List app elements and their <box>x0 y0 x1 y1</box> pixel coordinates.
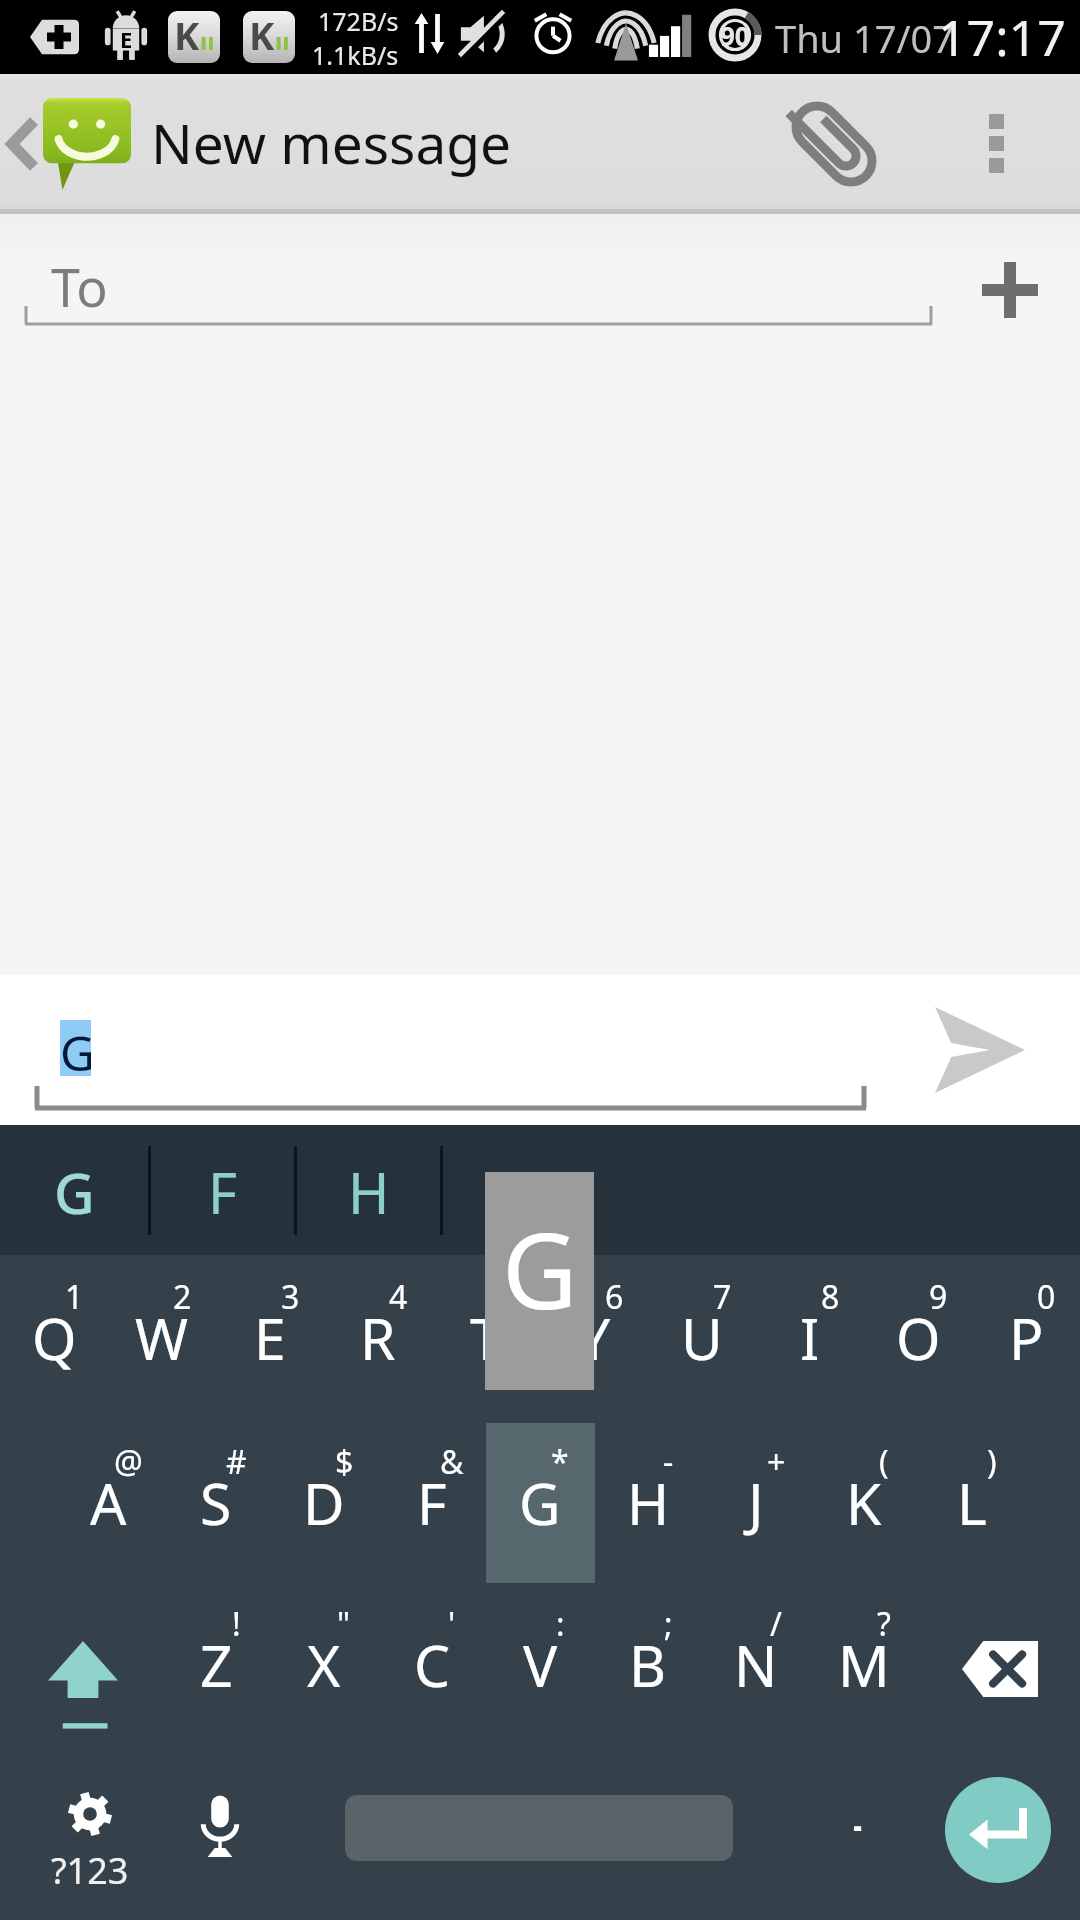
staticText: ? <box>877 1602 891 1646</box>
staticText: 90 <box>720 18 750 53</box>
staticText: " <box>337 1602 351 1646</box>
staticText: G <box>519 1464 561 1542</box>
staticText: / <box>770 1602 782 1646</box>
staticText: K <box>174 11 200 61</box>
staticText: S <box>200 1464 232 1542</box>
button[interactable]: ' <box>378 1582 486 1737</box>
staticText: @ <box>114 1440 143 1484</box>
staticText: $ <box>335 1440 354 1484</box>
button[interactable]: * <box>486 1420 594 1575</box>
button[interactable]: Symbols <box>15 1773 165 1913</box>
button[interactable]: $ <box>270 1420 378 1575</box>
button[interactable]: F <box>151 1125 294 1255</box>
staticText: E <box>120 24 133 54</box>
button[interactable]: Voice input <box>160 1755 280 1895</box>
button[interactable]: 7 <box>648 1255 756 1410</box>
staticText: 8 <box>821 1275 840 1319</box>
staticText: H <box>348 1154 390 1230</box>
staticText: J <box>748 1464 764 1542</box>
staticText: A <box>90 1464 127 1542</box>
button[interactable]: 6 <box>540 1255 648 1410</box>
button[interactable]: 9 <box>864 1255 972 1410</box>
staticText: ! <box>232 1602 241 1646</box>
button[interactable]: 4 <box>324 1255 432 1410</box>
staticText: 9 <box>929 1275 948 1319</box>
button[interactable]: @ <box>54 1420 162 1575</box>
staticText: 1 <box>65 1275 84 1319</box>
staticText: C <box>414 1626 451 1704</box>
staticText: X <box>307 1626 341 1704</box>
button[interactable]: ; <box>594 1582 702 1737</box>
staticText: To <box>51 251 108 322</box>
button[interactable]: 0 <box>972 1255 1080 1410</box>
staticText: O <box>896 1299 941 1377</box>
staticText: - <box>663 1440 674 1484</box>
staticText: ( <box>879 1440 889 1484</box>
button[interactable] <box>800 1755 920 1895</box>
staticText: N <box>734 1626 778 1704</box>
staticText: P <box>1009 1299 1044 1377</box>
staticText: Q <box>32 1299 77 1377</box>
staticText: G <box>60 1020 91 1076</box>
button[interactable]: More options <box>912 74 1080 214</box>
staticText: 1.1kB/s <box>312 38 399 72</box>
staticText: 4 <box>389 1275 408 1319</box>
button[interactable]: G <box>0 975 880 1125</box>
staticText: : <box>556 1602 565 1646</box>
staticText: Y <box>578 1299 611 1377</box>
staticText: G <box>502 1198 578 1340</box>
button[interactable]: Attach <box>756 74 912 214</box>
staticText: F <box>208 1154 238 1230</box>
button[interactable]: & <box>378 1420 486 1575</box>
button[interactable]: 3 <box>216 1255 324 1410</box>
staticText: ; <box>664 1602 673 1646</box>
staticText: 5 <box>497 1275 516 1319</box>
button[interactable]: Add recipient <box>940 214 1080 344</box>
staticText: H <box>627 1464 670 1542</box>
staticText: B <box>629 1626 667 1704</box>
button[interactable]: 8 <box>756 1255 864 1410</box>
staticText: F <box>417 1464 447 1542</box>
button[interactable]: ( <box>810 1420 918 1575</box>
button[interactable]: Send <box>880 975 1080 1125</box>
button[interactable]: Enter <box>945 1777 1051 1883</box>
staticText: G <box>54 1154 95 1230</box>
staticText: U <box>681 1299 723 1377</box>
staticText: 2 <box>173 1275 192 1319</box>
staticText: + <box>767 1440 786 1484</box>
button[interactable]: " <box>270 1582 378 1737</box>
button[interactable]: 1 <box>0 1255 108 1410</box>
button[interactable]: Shift <box>8 1582 158 1737</box>
staticText: L <box>957 1464 987 1542</box>
staticText: K <box>249 11 275 61</box>
button[interactable]: + <box>702 1420 810 1575</box>
staticText: ' <box>448 1602 456 1646</box>
button[interactable]: # <box>162 1420 270 1575</box>
staticText: New message <box>151 105 512 180</box>
button[interactable]: / <box>702 1582 810 1737</box>
button[interactable]: 2 <box>108 1255 216 1410</box>
button[interactable]: ? <box>810 1582 918 1737</box>
staticText: ?123 <box>51 1846 129 1895</box>
staticText: 7 <box>713 1275 732 1319</box>
staticText: M <box>838 1626 890 1704</box>
button[interactable]: To <box>0 214 940 344</box>
staticText: E <box>254 1299 286 1377</box>
button[interactable]: Backspace <box>925 1582 1075 1737</box>
button[interactable]: ) <box>918 1420 1026 1575</box>
button[interactable]: G <box>0 1125 148 1255</box>
staticText: V <box>523 1626 558 1704</box>
button[interactable]: ! <box>162 1582 270 1737</box>
staticText: ıı <box>275 24 290 57</box>
button[interactable]: - <box>594 1420 702 1575</box>
staticText: D <box>303 1464 345 1542</box>
button[interactable]: : <box>486 1582 594 1737</box>
button[interactable]: New message <box>0 98 756 190</box>
button[interactable]: H <box>297 1125 440 1255</box>
button[interactable]: 5 <box>432 1255 540 1410</box>
staticText: ) <box>987 1440 997 1484</box>
staticText: Z <box>200 1626 233 1704</box>
staticText: * <box>551 1440 569 1484</box>
staticText: K <box>846 1464 882 1542</box>
